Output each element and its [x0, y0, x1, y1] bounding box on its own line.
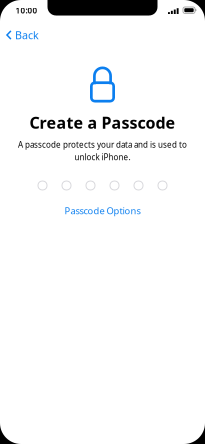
staticText: Create a Passcode — [29, 112, 175, 133]
staticText: 10:00 — [15, 5, 37, 16]
staticText: Passcode Options — [64, 204, 140, 217]
button[interactable]: Back — [0, 24, 47, 46]
staticText: unlock iPhone. — [74, 152, 130, 162]
staticText: A passcode protects your data and is use… — [18, 139, 187, 150]
button[interactable]: Passcode Options — [52, 200, 152, 221]
staticText: Back — [15, 28, 39, 42]
